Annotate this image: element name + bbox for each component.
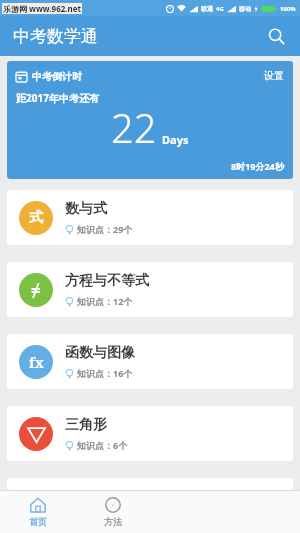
staticText: 设置 bbox=[264, 69, 284, 82]
button[interactable]: 式 bbox=[7, 190, 293, 245]
staticText: 距2017年中考还有 bbox=[16, 91, 99, 105]
staticText: 三角形 bbox=[65, 416, 107, 434]
staticText: 乐游网 www.962.net bbox=[3, 3, 81, 14]
staticText: 方程与不等式 bbox=[65, 272, 149, 290]
staticText: 知识点：12个 bbox=[77, 295, 133, 307]
staticText: Days bbox=[162, 132, 189, 147]
staticText: 联通 bbox=[201, 5, 213, 13]
staticText: 知识点：29个 bbox=[77, 223, 133, 235]
button[interactable]: 方法 bbox=[75, 491, 150, 533]
staticText: 移动 bbox=[239, 5, 251, 13]
button[interactable]: 设置 bbox=[264, 69, 284, 82]
staticText: ≠ bbox=[31, 279, 41, 302]
staticText: 22 bbox=[111, 100, 157, 154]
staticText: 首页 bbox=[29, 516, 47, 527]
staticText: 100% bbox=[280, 5, 296, 13]
staticText: 方法 bbox=[104, 516, 122, 527]
button[interactable]: ≠ bbox=[7, 262, 293, 317]
staticText: 4G bbox=[216, 5, 224, 13]
staticText: 中考数学通 bbox=[13, 26, 98, 47]
button[interactable]: 首页 bbox=[0, 491, 75, 533]
staticText: 函数与图像 bbox=[65, 344, 135, 362]
button[interactable]: Search bbox=[260, 20, 292, 52]
staticText: 8时19分24秒 bbox=[231, 160, 284, 172]
button[interactable]: 中考倒计时 bbox=[7, 61, 293, 179]
button[interactable]: fx bbox=[7, 334, 293, 389]
staticText: 知识点：16个 bbox=[77, 367, 133, 379]
staticText: 数与式 bbox=[65, 200, 107, 218]
staticText: 知识点：6个 bbox=[77, 439, 128, 451]
staticText: fx bbox=[29, 353, 44, 372]
staticText: 式 bbox=[29, 209, 43, 227]
button[interactable]: 三角形 bbox=[7, 406, 293, 461]
staticText: 中考倒计时 bbox=[32, 70, 82, 83]
